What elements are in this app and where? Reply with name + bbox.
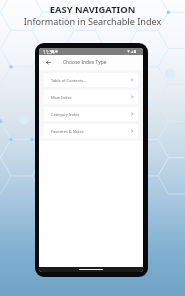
button[interactable]: Category Index [44,107,138,121]
button[interactable]: Main Index [44,90,138,104]
staticText: Favorites & Notes [51,129,84,134]
staticText: Category Index [51,112,80,117]
staticText: Table of Contents... [51,78,87,83]
staticText: Main Index [51,95,72,100]
staticText: Choose Index Type [63,59,107,66]
staticText: Information in Searchable Index [0,15,185,27]
button[interactable]: Table of Contents... [44,73,138,87]
button[interactable]: Favorites & Notes [44,124,138,138]
staticText: 11:34 [43,49,55,55]
staticText: EASY NAVIGATION [0,3,185,16]
button[interactable]: Back [46,60,51,65]
